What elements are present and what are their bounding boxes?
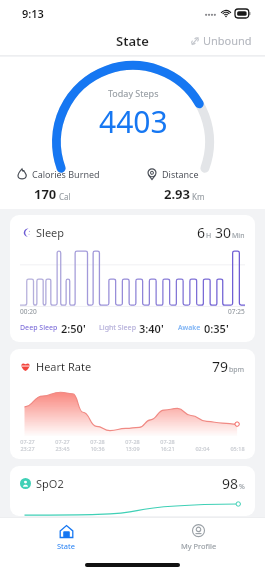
staticText: %: [239, 482, 245, 492]
staticText: 4403: [99, 101, 168, 142]
staticText: 2.93: [164, 185, 190, 203]
staticText: 23:27: [20, 445, 35, 451]
staticText: 2:50': [61, 321, 86, 334]
staticText: Light Sleep: [99, 323, 136, 333]
staticText: 07-28: [160, 438, 175, 445]
button[interactable]: SpO2: [10, 466, 255, 516]
staticText: 3:40': [139, 321, 164, 334]
staticText: 98: [222, 474, 239, 493]
staticText: SpO2: [36, 476, 64, 491]
staticText: 02:04: [195, 445, 210, 451]
staticText: 07-28: [125, 438, 140, 445]
staticText: Min: [232, 231, 245, 241]
staticText: 07-27: [20, 438, 35, 445]
staticText: Awake: [178, 323, 201, 333]
button[interactable]: Unbound: [187, 29, 255, 52]
button[interactable]: Heart Rate: [10, 349, 255, 459]
staticText: Cal: [59, 191, 71, 202]
button[interactable]: Sleep: [10, 215, 255, 342]
staticText: Calories Burned: [32, 168, 100, 180]
staticText: Heart Rate: [36, 359, 92, 374]
button[interactable]: State: [0, 518, 132, 556]
staticText: 23:45: [55, 445, 70, 451]
staticText: 79: [212, 357, 229, 376]
staticText: 6: [197, 223, 206, 242]
button[interactable]: Distance: [146, 168, 265, 203]
staticText: 07-27: [55, 438, 70, 445]
staticText: Today Steps: [108, 87, 159, 99]
staticText: 13:09: [125, 445, 140, 451]
staticText: 07-28: [90, 438, 105, 445]
staticText: H: [206, 231, 212, 241]
staticText: 07:25: [228, 307, 245, 316]
other: State: [59, 524, 74, 539]
other: My Profile: [191, 524, 206, 539]
staticText: 10:36: [90, 445, 105, 451]
staticText: My Profile: [181, 541, 217, 551]
button[interactable]: Calories Burned: [16, 168, 132, 203]
staticText: State: [116, 32, 149, 50]
staticText: 16:21: [160, 445, 175, 451]
button[interactable]: My Profile: [132, 518, 265, 556]
staticText: Deep Sleep: [20, 323, 58, 333]
staticText: Sleep: [36, 225, 65, 240]
staticText: Unbound: [203, 33, 252, 48]
staticText: 05:18: [230, 445, 245, 451]
staticText: Distance: [162, 168, 199, 180]
staticText: 30: [215, 223, 232, 242]
staticText: 00:20: [20, 307, 37, 316]
staticText: Km: [192, 191, 205, 202]
staticText: State: [57, 541, 75, 551]
staticText: bpm: [229, 365, 245, 375]
staticText: 170: [34, 185, 57, 203]
staticText: 9:13: [22, 6, 44, 21]
staticText: 0:35': [204, 321, 229, 334]
